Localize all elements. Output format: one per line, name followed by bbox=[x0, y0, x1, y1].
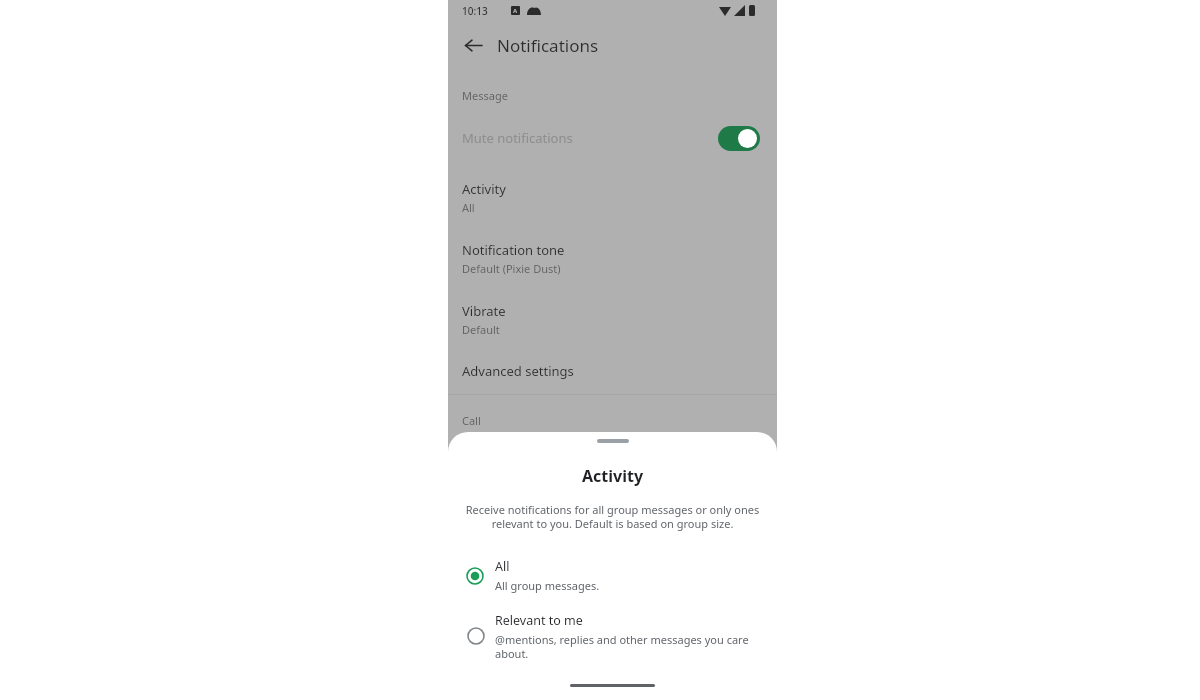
staticText: A bbox=[513, 7, 518, 15]
button[interactable]: Mute notifications toggle bbox=[718, 126, 760, 151]
staticText: Advanced settings bbox=[462, 362, 574, 380]
staticText: Relevant to me bbox=[495, 612, 583, 629]
button[interactable]: Advanced settings bbox=[448, 358, 777, 384]
staticText: Activity bbox=[582, 465, 644, 487]
button[interactable]: Activity bbox=[448, 178, 777, 217]
staticText: Notification tone bbox=[462, 241, 565, 259]
staticText: Receive notifications for all group mess… bbox=[462, 502, 763, 531]
staticText: Notifications bbox=[497, 34, 599, 57]
staticText: Default bbox=[462, 322, 500, 337]
staticText: Activity bbox=[462, 180, 506, 198]
button[interactable]: Notification tone bbox=[448, 239, 777, 278]
staticText: All bbox=[495, 558, 510, 575]
staticText: Default (Pixie Dust) bbox=[462, 261, 561, 276]
button[interactable]: Vibrate bbox=[448, 300, 777, 339]
staticText: Vibrate bbox=[462, 302, 506, 320]
staticText: @mentions, replies and other messages yo… bbox=[495, 632, 763, 661]
staticText: All group messages. bbox=[495, 578, 600, 593]
staticText: Message bbox=[462, 88, 508, 103]
button[interactable]: Mute notifications bbox=[448, 118, 777, 158]
staticText: 10:13 bbox=[462, 4, 488, 18]
staticText: All bbox=[462, 200, 475, 215]
staticText: Mute notifications bbox=[462, 129, 718, 147]
button[interactable]: Back bbox=[456, 28, 490, 62]
staticText: Call bbox=[462, 413, 481, 428]
button[interactable]: Relevant to me bbox=[448, 610, 777, 663]
button[interactable]: All bbox=[448, 556, 777, 596]
